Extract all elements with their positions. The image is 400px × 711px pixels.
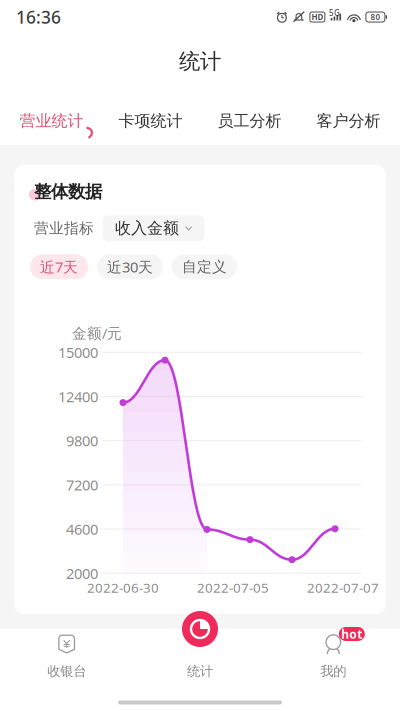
staticText: 收入金额 — [115, 218, 179, 238]
staticText: 15000 — [58, 342, 98, 362]
staticText: hot — [341, 626, 362, 642]
staticText: 客户分析 — [316, 111, 380, 131]
staticText: 营业统计 — [19, 111, 83, 131]
staticText: 卡项统计 — [118, 111, 182, 131]
staticText: 整体数据 — [34, 181, 102, 202]
staticText: HD — [311, 12, 323, 22]
staticText: 9800 — [66, 431, 98, 450]
button[interactable]: 营业统计 — [2, 89, 101, 145]
button[interactable]: 员工分析 — [200, 89, 299, 145]
staticText: 2022-07-05 — [197, 579, 269, 596]
staticText: 2022-07-07 — [307, 579, 379, 596]
staticText: 员工分析 — [217, 111, 281, 131]
staticText: 12400 — [58, 387, 98, 406]
staticText: 收银台 — [47, 663, 86, 679]
staticText: 80 — [370, 12, 380, 22]
staticText: 我的 — [320, 663, 346, 679]
staticText: 16:36 — [16, 5, 61, 28]
button[interactable]: 近30天 — [97, 254, 163, 279]
button[interactable]: 近7天 — [30, 254, 88, 279]
button[interactable]: 收入金额 — [103, 215, 204, 241]
button[interactable]: 统计 — [182, 611, 218, 647]
staticText: 2000 — [66, 563, 98, 583]
staticText: 7200 — [66, 475, 98, 495]
staticText: 5G — [329, 7, 340, 18]
staticText: 4600 — [66, 519, 98, 539]
staticText: 近30天 — [107, 257, 153, 277]
staticText: 统计 — [179, 48, 221, 75]
button[interactable]: 收银台 — [0, 629, 133, 690]
button[interactable]: 自定义 — [172, 254, 237, 279]
staticText: 营业指标 — [34, 219, 94, 237]
staticText: 自定义 — [182, 258, 227, 276]
staticText: 金额/元 — [72, 323, 122, 343]
staticText: 2022-06-30 — [87, 579, 159, 596]
staticText: 近7天 — [40, 257, 78, 277]
button[interactable]: 卡项统计 — [101, 89, 200, 145]
button[interactable]: hot — [267, 629, 400, 690]
button[interactable]: 统计 — [133, 629, 267, 690]
staticText: 统计 — [187, 663, 213, 679]
button[interactable]: 客户分析 — [299, 89, 398, 145]
